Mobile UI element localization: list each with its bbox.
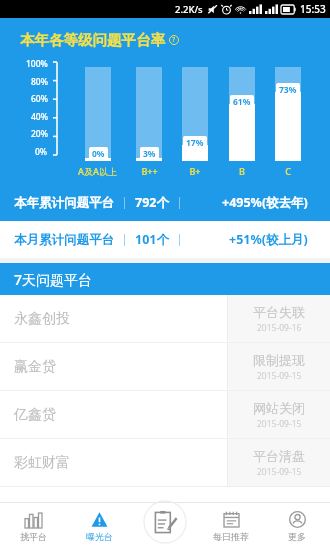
button[interactable]: 亿鑫贷	[0, 391, 330, 438]
staticText: 彩虹财富	[14, 454, 70, 472]
staticText: 曝光台	[86, 531, 113, 542]
staticText: +495%(较去年)	[222, 194, 308, 211]
staticText: 平台失联	[253, 304, 305, 320]
staticText: 本年累计问题平台	[14, 195, 114, 211]
staticText: 2015-09-15	[257, 370, 302, 382]
staticText: 本月累计问题平台	[14, 232, 114, 248]
button[interactable]: 挑平台	[0, 502, 66, 550]
staticText: 100%	[26, 58, 48, 67]
button[interactable]: 更多	[264, 502, 330, 550]
staticText: +51%(较上月)	[229, 231, 308, 248]
staticText: 平台清盘	[253, 448, 305, 464]
staticText: 40%	[31, 111, 48, 120]
staticText: 每日推荐	[213, 531, 249, 542]
staticText: ?	[172, 35, 176, 45]
button[interactable]: 本月累计问题平台	[0, 221, 330, 258]
staticText: 60%	[31, 93, 48, 102]
staticText: 792个	[135, 194, 169, 211]
staticText: 更多	[288, 531, 306, 542]
staticText: 20%	[31, 128, 48, 137]
staticText: A及A以上	[78, 165, 117, 177]
staticText: 网站关闭	[253, 400, 305, 416]
staticText: C	[285, 165, 291, 177]
staticText: 3%	[143, 148, 156, 160]
staticText: 2015-09-15	[257, 418, 302, 430]
staticText: 101个	[135, 231, 169, 248]
button[interactable]: 7天问题平台	[0, 263, 330, 295]
staticText: 0%	[35, 146, 48, 155]
staticText: B+	[189, 165, 201, 177]
button[interactable]: 彩虹财富	[0, 439, 330, 486]
staticText: 永鑫创投	[14, 310, 70, 328]
staticText: B++	[141, 165, 158, 177]
button[interactable]: 每日推荐	[198, 502, 264, 550]
staticText: 2015-09-16	[257, 322, 302, 334]
button[interactable]: 本年累计问题平台	[0, 184, 330, 221]
staticText: 80%	[31, 76, 48, 85]
staticText: 17%	[186, 137, 204, 149]
staticText: 赢金贷	[14, 358, 56, 376]
staticText: 本年各等级问题平台率	[20, 31, 165, 49]
staticText: 0%	[92, 148, 105, 160]
button[interactable]: 曝光台	[66, 502, 132, 550]
button[interactable]: 说明	[169, 35, 179, 45]
staticText: 亿鑫贷	[14, 406, 56, 424]
button[interactable]: 记账	[132, 502, 198, 550]
staticText: 15:53	[300, 2, 326, 16]
staticText: B	[239, 165, 245, 177]
button[interactable]: 永鑫创投	[0, 295, 330, 342]
staticText: 7天问题平台	[14, 270, 93, 289]
button[interactable]: 赢金贷	[0, 343, 330, 390]
staticText: 限制提现	[253, 352, 305, 368]
staticText: 61%	[233, 96, 251, 108]
staticText: 挑平台	[20, 531, 47, 542]
staticText: 2.2K/s	[175, 3, 203, 16]
staticText: 73%	[279, 84, 297, 96]
staticText: 2015-09-15	[257, 466, 302, 478]
